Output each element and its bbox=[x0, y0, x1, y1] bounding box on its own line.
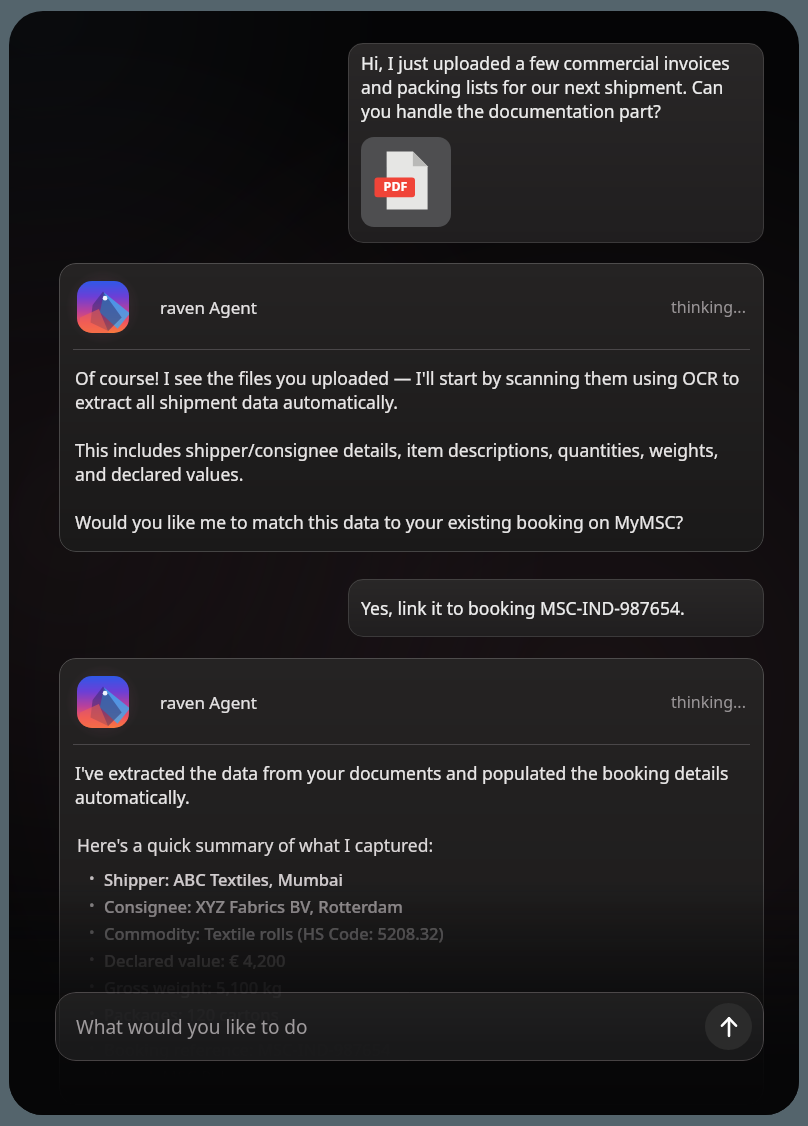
staticText: Packages: 120 cartons bbox=[104, 1003, 279, 1025]
staticText: Hi, I just uploaded a few commercial inv… bbox=[361, 51, 751, 123]
staticText: What would you like to do bbox=[76, 1014, 308, 1040]
staticText: raven Agent bbox=[160, 296, 257, 319]
staticText: • bbox=[89, 976, 95, 996]
button[interactable]: raven Agent bbox=[59, 263, 764, 552]
staticText: Shipper: ABC Textiles, Mumbai bbox=[104, 868, 343, 890]
staticText: • bbox=[89, 895, 95, 915]
staticText: I've extracted the data from your docume… bbox=[75, 761, 748, 809]
staticText: • bbox=[89, 949, 95, 969]
staticText: • bbox=[89, 1003, 95, 1023]
staticText: • bbox=[89, 922, 95, 942]
button[interactable]: Yes, link it to booking MSC-IND-987654. bbox=[348, 579, 764, 637]
staticText: Yes, link it to booking MSC-IND-987654. bbox=[361, 596, 685, 620]
staticText: Consignee: XYZ Fabrics BV, Rotterdam bbox=[104, 895, 403, 917]
staticText: Here's a quick summary of what I capture… bbox=[77, 833, 434, 857]
staticText: • bbox=[89, 868, 95, 888]
staticText: PDF bbox=[375, 178, 416, 195]
staticText: raven Agent bbox=[160, 691, 257, 714]
staticText: Of course! I see the files you uploaded … bbox=[75, 366, 748, 414]
button[interactable]: raven Agent bbox=[59, 658, 764, 1105]
button[interactable]: Send bbox=[705, 1003, 752, 1050]
staticText: Commodity: Textile rolls (HS Code: 5208.… bbox=[104, 922, 444, 944]
staticText: This includes shipper/consignee details,… bbox=[75, 438, 748, 486]
staticText: thinking... bbox=[671, 691, 746, 713]
staticText: Declared value: € 4,200 bbox=[104, 949, 286, 971]
staticText: thinking... bbox=[671, 296, 746, 318]
button[interactable]: Hi, I just uploaded a few commercial inv… bbox=[348, 43, 764, 243]
button[interactable]: What would you like to do bbox=[55, 992, 764, 1061]
staticText: Gross weight: 5,100 kg bbox=[104, 976, 282, 998]
staticText: Would you like me to match this data to … bbox=[75, 510, 684, 534]
button[interactable]: PDF attachment bbox=[361, 137, 451, 227]
